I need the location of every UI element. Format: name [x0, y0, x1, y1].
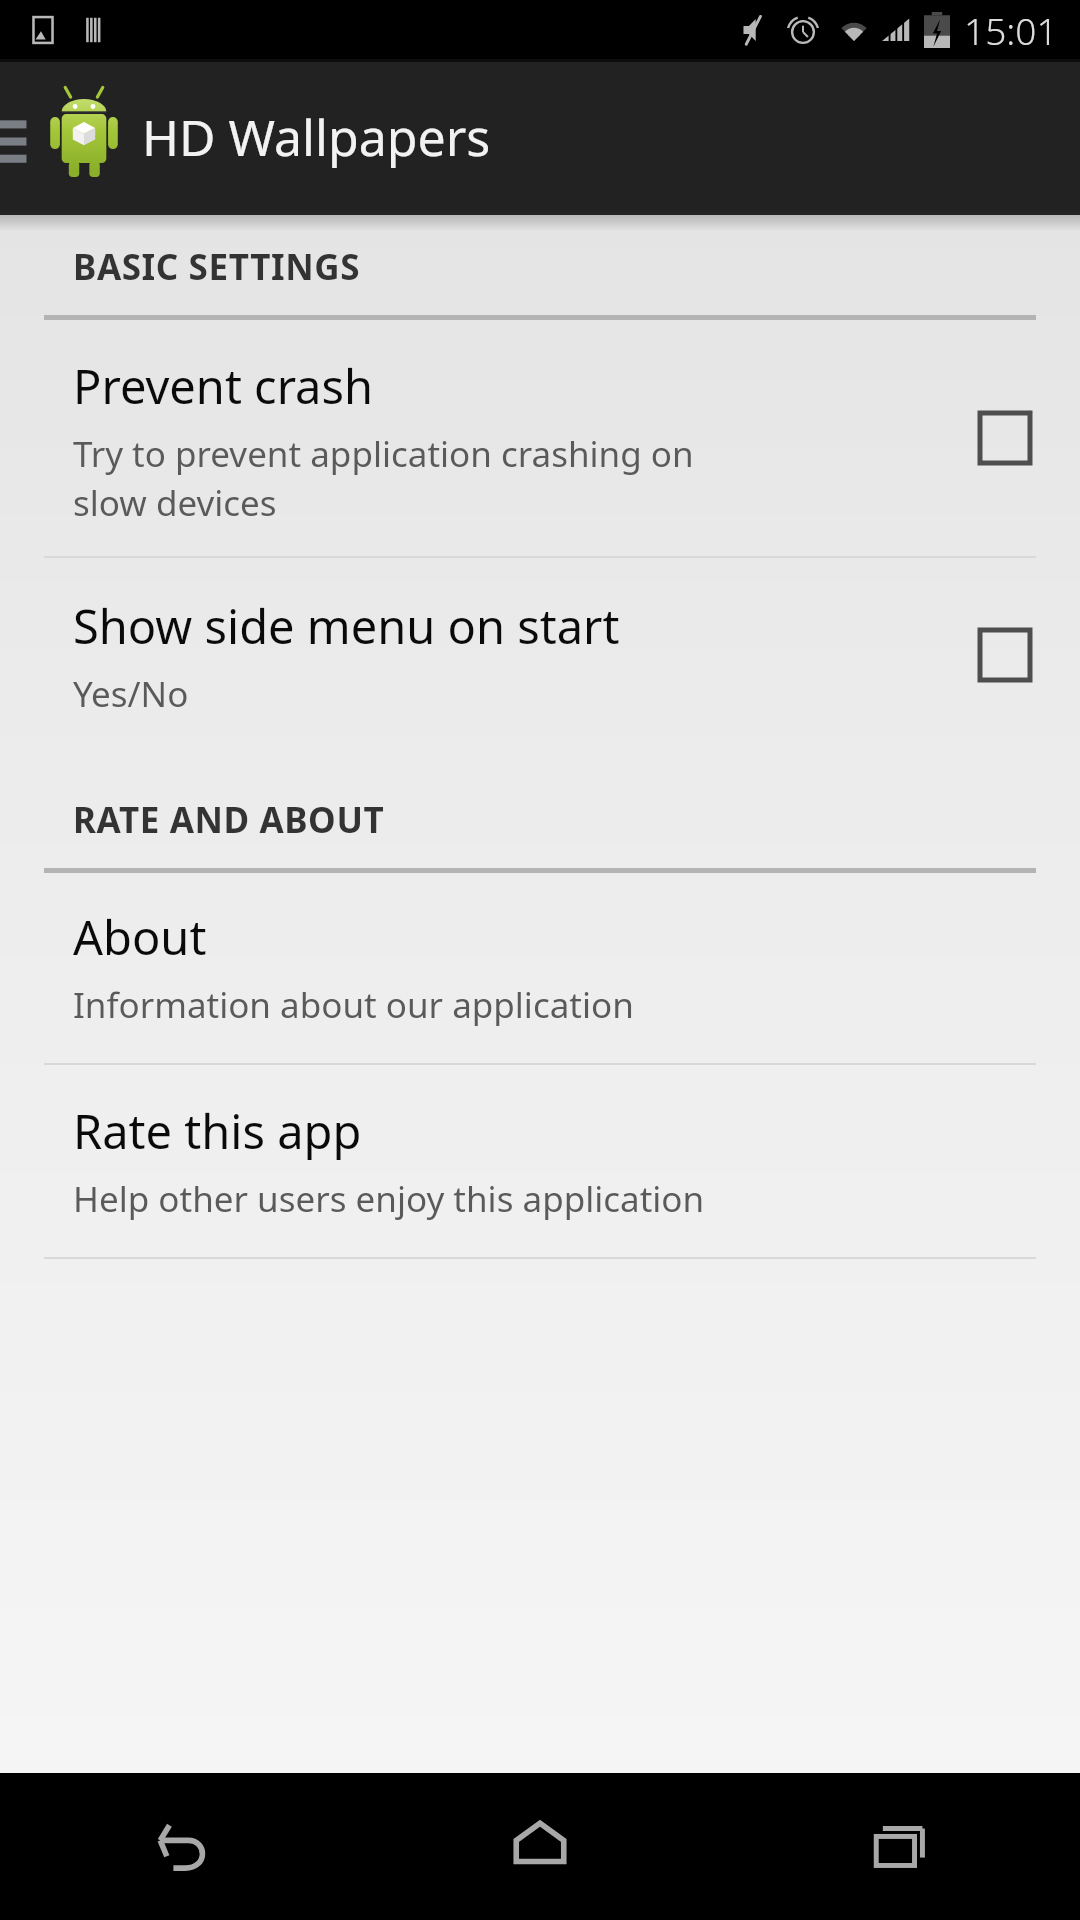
- staticText: Help other users enjoy this application: [73, 1175, 705, 1223]
- button[interactable]: Back: [0, 1773, 360, 1920]
- staticText: BASIC SETTINGS: [73, 243, 361, 291]
- staticText: Prevent crash: [73, 354, 374, 418]
- staticText: 15:01: [964, 5, 1058, 55]
- staticText: Information about our application: [73, 981, 634, 1029]
- staticText: RATE AND ABOUT: [73, 796, 385, 844]
- button[interactable]: Prevent crash: [0, 320, 1080, 556]
- button[interactable]: Show side menu on start checkbox: [930, 595, 1080, 715]
- button[interactable]: Open navigation drawer: [0, 59, 42, 215]
- button[interactable]: Home: [360, 1773, 720, 1920]
- button[interactable]: Recent apps: [720, 1773, 1080, 1920]
- staticText: HD Wallpapers: [142, 103, 491, 171]
- staticText: Show side menu on start: [73, 594, 620, 658]
- staticText: Rate this app: [73, 1099, 362, 1163]
- button[interactable]: Rate this app: [0, 1065, 1080, 1257]
- button[interactable]: Show side menu on start: [0, 558, 1080, 752]
- staticText: Try to prevent application crashing on s…: [73, 430, 694, 526]
- button[interactable]: About: [0, 873, 1080, 1063]
- staticText: About: [73, 905, 207, 969]
- button[interactable]: Prevent crash checkbox: [930, 378, 1080, 498]
- staticText: Yes/No: [73, 670, 189, 718]
